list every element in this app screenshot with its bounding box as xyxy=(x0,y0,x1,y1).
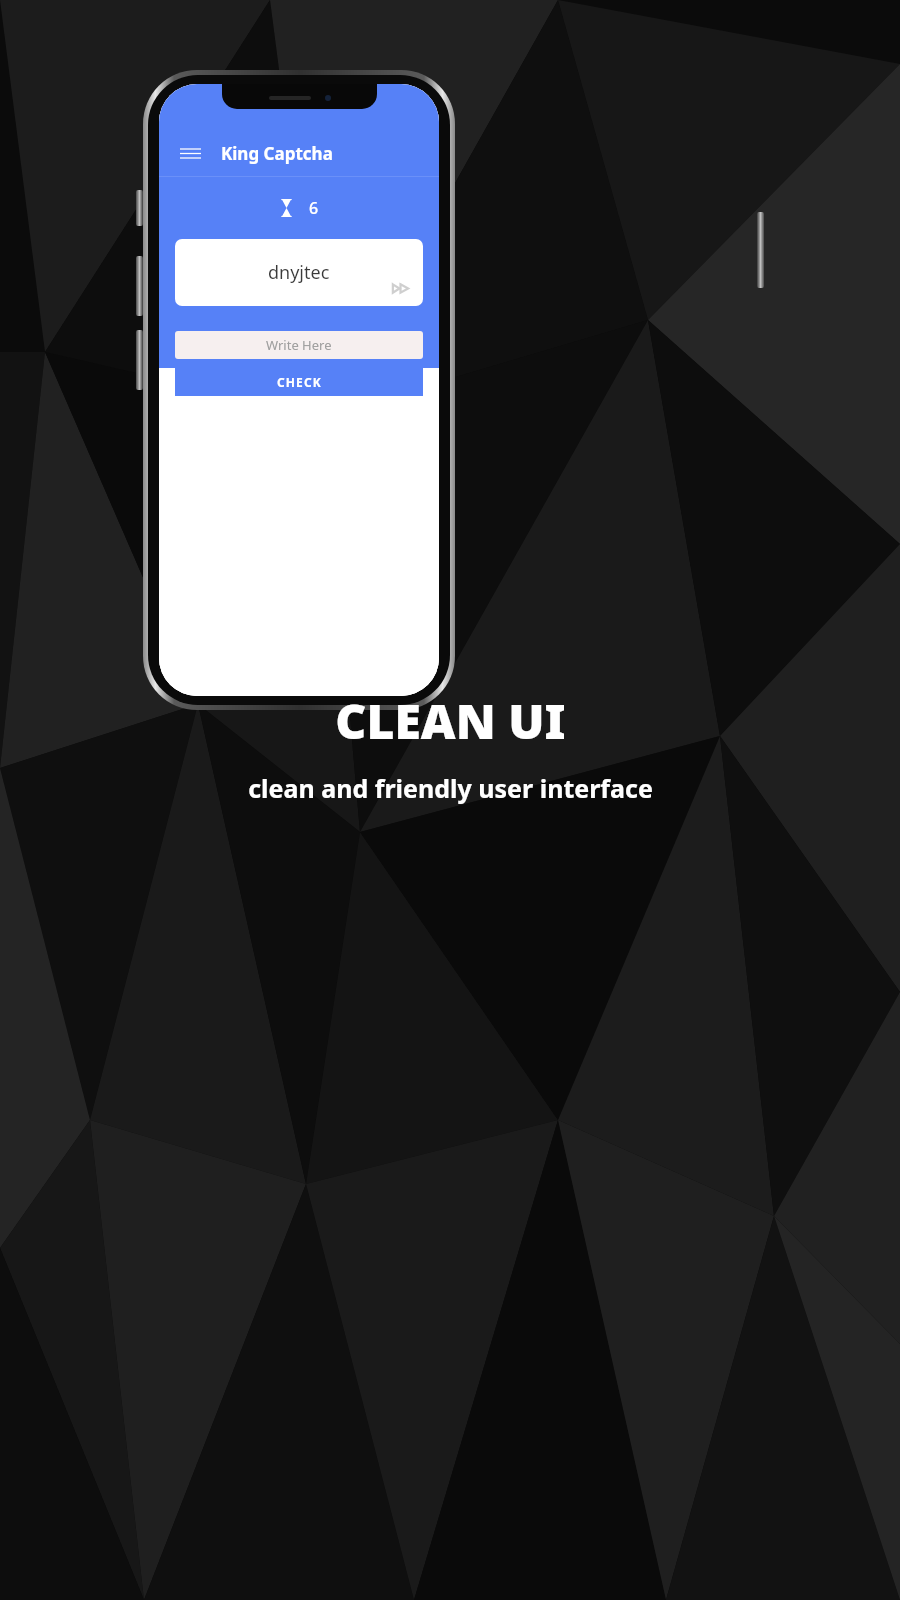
staticText: dnyjtec xyxy=(268,260,330,285)
button[interactable]: dnyjtec xyxy=(175,239,423,306)
staticText: clean and friendly user interface xyxy=(248,771,653,805)
staticText: Write Here xyxy=(266,336,332,354)
button[interactable]: Write Here xyxy=(175,331,423,359)
button[interactable]: CHECK xyxy=(175,368,423,396)
staticText: 6 xyxy=(309,197,319,219)
staticText: CHECK xyxy=(277,374,322,390)
staticText: King Captcha xyxy=(221,142,333,165)
button[interactable]: Open navigation menu xyxy=(173,136,207,170)
button[interactable]: Refresh captcha xyxy=(387,275,413,301)
staticText: CLEAN UI xyxy=(335,688,566,753)
